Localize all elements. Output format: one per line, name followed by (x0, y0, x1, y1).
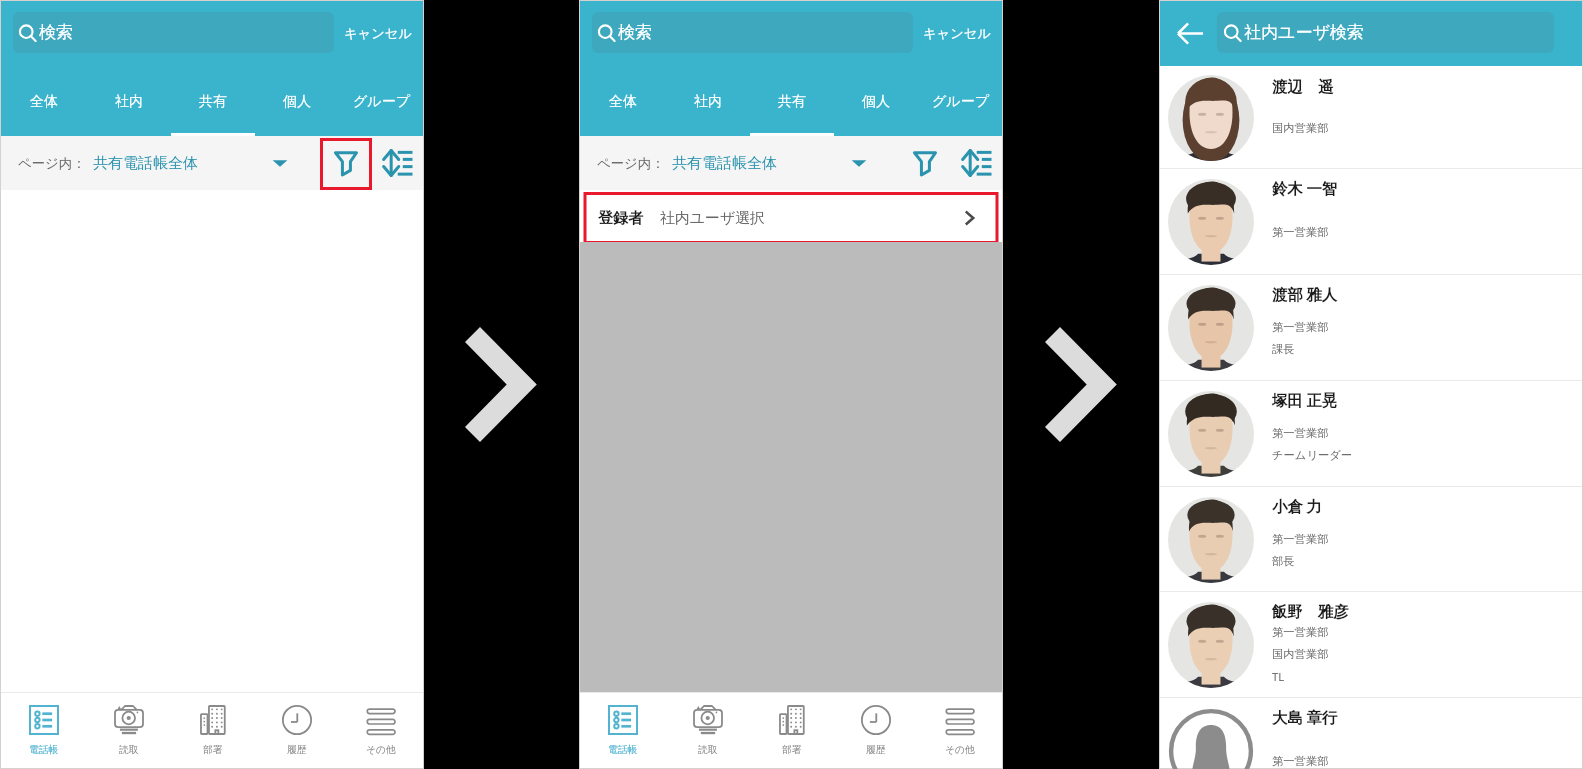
button[interactable]: Expand list (259, 136, 301, 190)
staticText: キャンセル (923, 25, 992, 42)
button[interactable]: Filter (320, 138, 372, 190)
staticText: TL (1272, 669, 1285, 684)
staticText: 国内営業部 (1272, 121, 1329, 135)
button[interactable]: 個人 (255, 66, 339, 136)
button[interactable]: 渡辺 遥 (1160, 67, 1582, 169)
staticText: その他 (945, 744, 975, 756)
button[interactable]: 小倉 力 (1160, 487, 1582, 592)
button[interactable]: 電話帳 (1, 693, 86, 768)
staticText: 履歴 (866, 744, 886, 756)
button[interactable]: 検索 (13, 12, 334, 53)
staticText: 共有電話帳全体 (93, 154, 198, 173)
staticText: 鈴木 一智 (1272, 178, 1338, 199)
button[interactable]: 社内 (665, 66, 750, 136)
button[interactable]: 履歴 (834, 693, 918, 768)
staticText: 社内ユーザ選択 (660, 209, 765, 228)
staticText: 第一営業部 (1272, 426, 1329, 440)
button[interactable]: 大島 章行 (1160, 698, 1582, 769)
button[interactable]: グループ (339, 66, 423, 136)
button[interactable]: キャンセル (913, 1, 1002, 66)
staticText: 部署 (782, 744, 802, 756)
button[interactable]: その他 (918, 693, 1002, 768)
staticText: 渡部 雅人 (1272, 284, 1338, 305)
button[interactable]: 渡部 雅人 (1160, 275, 1582, 380)
button[interactable]: その他 (339, 693, 423, 768)
button[interactable]: 登録者 (580, 192, 1002, 244)
staticText: その他 (366, 744, 396, 756)
staticText: 共有 (778, 93, 806, 111)
staticText: 第一営業部 (1272, 225, 1329, 239)
staticText: 電話帳 (608, 744, 638, 756)
staticText: 第一営業部 (1272, 754, 1329, 768)
staticText: ページ内： (18, 155, 86, 172)
button[interactable]: キャンセル (334, 1, 423, 66)
staticText: キャンセル (344, 25, 413, 42)
button[interactable]: 読取 (665, 693, 750, 768)
staticText: 第一営業部 (1272, 625, 1329, 639)
button[interactable]: Expand list (838, 136, 880, 190)
staticText: 個人 (283, 93, 311, 111)
button[interactable]: 部署 (750, 693, 834, 768)
staticText: 個人 (862, 93, 890, 111)
staticText: 登録者 (598, 209, 643, 228)
button[interactable]: 個人 (834, 66, 918, 136)
button[interactable]: 履歴 (255, 693, 339, 768)
staticText: 読取 (119, 744, 139, 756)
staticText: 共有電話帳全体 (672, 154, 777, 173)
staticText: 課長 (1272, 342, 1295, 356)
staticText: 部署 (203, 744, 223, 756)
button[interactable]: 共有 (171, 66, 255, 136)
button[interactable]: Sort (951, 136, 1003, 190)
button[interactable]: 電話帳 (580, 693, 665, 768)
staticText: 渡辺 遥 (1272, 76, 1334, 97)
button[interactable]: Sort (372, 136, 424, 190)
staticText: 全体 (30, 93, 58, 111)
button[interactable]: 社内ユーザ検索 (1217, 12, 1554, 53)
button[interactable]: 検索 (592, 12, 913, 53)
staticText: 検索 (39, 22, 73, 43)
staticText: チームリーダー (1272, 448, 1353, 462)
button[interactable]: 全体 (580, 66, 665, 136)
staticText: 飯野 雅彦 (1272, 601, 1349, 622)
button[interactable]: 部署 (171, 693, 255, 768)
button[interactable]: 鈴木 一智 (1160, 169, 1582, 274)
staticText: 履歴 (287, 744, 307, 756)
staticText: 検索 (618, 22, 652, 43)
button[interactable]: Filter (899, 138, 951, 190)
staticText: 部長 (1272, 554, 1295, 568)
staticText: 社内 (694, 93, 722, 111)
button[interactable]: 社内 (86, 66, 171, 136)
button[interactable]: 全体 (1, 66, 86, 136)
staticText: 読取 (698, 744, 718, 756)
staticText: 塚田 正晃 (1272, 390, 1338, 411)
button[interactable]: 共有 (750, 66, 834, 136)
staticText: 第一営業部 (1272, 320, 1329, 334)
staticText: 小倉 力 (1272, 496, 1322, 517)
staticText: ページ内： (597, 155, 665, 172)
staticText: 全体 (609, 93, 637, 111)
staticText: 大島 章行 (1272, 707, 1338, 728)
staticText: 社内 (115, 93, 143, 111)
staticText: 第一営業部 (1272, 532, 1329, 546)
button[interactable]: Back (1160, 1, 1217, 66)
staticText: 共有 (199, 93, 227, 111)
staticText: 社内ユーザ検索 (1244, 22, 1364, 43)
button[interactable]: 塚田 正晃 (1160, 381, 1582, 486)
button[interactable]: 飯野 雅彦 (1160, 592, 1582, 697)
button[interactable]: グループ (918, 66, 1002, 136)
staticText: 電話帳 (29, 744, 59, 756)
staticText: 国内営業部 (1272, 647, 1329, 661)
staticText: グループ (353, 93, 410, 111)
button[interactable]: 読取 (86, 693, 171, 768)
staticText: グループ (932, 93, 989, 111)
